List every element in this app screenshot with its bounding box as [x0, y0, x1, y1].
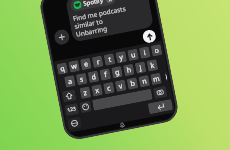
button[interactable]: f [99, 68, 111, 81]
staticText: Find me podcasts similar to Unbarring [72, 0, 150, 39]
staticText: n [141, 76, 148, 87]
button[interactable]: b [126, 77, 138, 90]
button[interactable]: s [76, 73, 88, 85]
button[interactable]: i [139, 46, 151, 59]
staticText: g [114, 67, 121, 78]
button[interactable]: Return [148, 99, 173, 114]
staticText: d [91, 72, 97, 83]
button[interactable]: m [150, 73, 162, 85]
button[interactable]: y [115, 51, 127, 63]
button[interactable]: o [151, 44, 162, 57]
button[interactable]: w [68, 60, 80, 73]
button[interactable]: Language [67, 117, 82, 130]
button[interactable]: t [103, 53, 115, 66]
button[interactable]: Add attachment [53, 28, 71, 46]
button[interactable]: v [115, 79, 127, 92]
button[interactable]: r [92, 55, 104, 68]
staticText: s [79, 74, 85, 85]
staticText: o [154, 45, 161, 56]
staticText: h [126, 65, 133, 76]
button[interactable]: u [127, 48, 139, 61]
button[interactable]: n [138, 75, 150, 88]
staticText: v [118, 81, 124, 92]
button[interactable]: d [87, 70, 99, 83]
staticText: x [94, 86, 100, 96]
button[interactable]: Send [142, 29, 157, 44]
staticText: i [143, 48, 147, 58]
button[interactable]: 123 [64, 103, 79, 116]
staticText: k [150, 61, 155, 71]
button[interactable]: x [91, 84, 103, 97]
button[interactable]: Dictate [116, 122, 129, 129]
button[interactable]: h [123, 64, 135, 76]
staticText: a [67, 77, 73, 87]
staticText: b [130, 78, 136, 89]
button[interactable]: z [79, 86, 91, 99]
button[interactable]: q [56, 62, 68, 75]
staticText: Spotify [83, 0, 104, 8]
button[interactable]: Backspace [165, 71, 168, 82]
staticText: r [96, 57, 101, 67]
staticText: m [152, 74, 161, 85]
button[interactable]: Camera [153, 86, 168, 99]
staticText: 123 [67, 105, 77, 114]
staticText: q [59, 64, 66, 74]
button[interactable]: Remove Spotify [105, 0, 114, 3]
button[interactable]: Spotify [65, 0, 154, 42]
staticText: w [70, 61, 78, 72]
staticText: c [106, 83, 112, 94]
staticText: t [108, 55, 112, 65]
staticText: z [82, 88, 88, 98]
button[interactable]: Spotify [69, 0, 117, 12]
button[interactable]: g [111, 66, 123, 79]
button[interactable]: c [103, 82, 115, 94]
button[interactable]: a [64, 75, 76, 88]
button[interactable]: e [80, 58, 92, 70]
staticText: y [118, 52, 124, 63]
button[interactable]: Shift [62, 89, 77, 102]
button[interactable]: j [135, 61, 147, 74]
button[interactable] [92, 89, 153, 111]
button[interactable]: k [146, 59, 158, 72]
staticText: f [103, 70, 108, 80]
staticText: j [139, 63, 143, 73]
button[interactable]: Emoji [79, 100, 92, 113]
staticText: u [130, 50, 137, 61]
staticText: e [83, 59, 89, 70]
